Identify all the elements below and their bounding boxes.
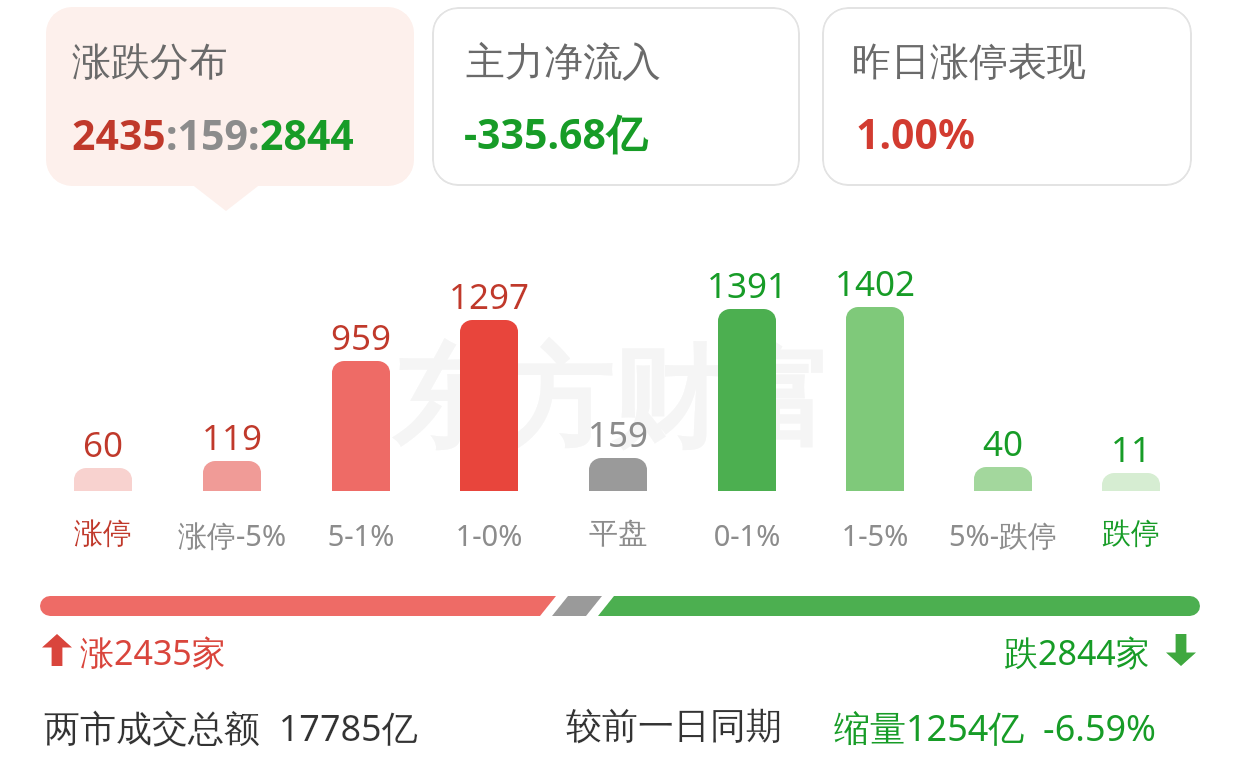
button[interactable]: [432, 7, 800, 186]
staticText: 涨停-5%: [142, 515, 322, 557]
staticText: 159: [548, 410, 688, 454]
staticText: 1402: [805, 259, 945, 303]
staticText: 较前一日同期: [566, 703, 782, 748]
button[interactable]: 0-1%: [657, 515, 837, 557]
button[interactable]: 5%-跌停: [913, 515, 1093, 557]
staticText: 两市成交总额 17785亿: [44, 703, 418, 752]
staticText: :159:: [166, 106, 260, 162]
button[interactable]: 涨停-5%: [142, 515, 322, 557]
button[interactable]: 跌停: [1041, 515, 1221, 557]
button[interactable]: [822, 7, 1192, 186]
other: Falling: [1166, 634, 1196, 666]
staticText: 119: [162, 413, 302, 457]
button[interactable]: 1-0%: [399, 515, 579, 557]
staticText: 平盘: [528, 515, 708, 557]
button[interactable]: 1-5%: [785, 515, 965, 557]
staticText: 1391: [677, 261, 817, 305]
staticText: 东方财富: [392, 330, 832, 469]
staticText: 2844: [260, 106, 354, 162]
staticText: 1-0%: [399, 515, 579, 557]
staticText: 0-1%: [657, 515, 837, 557]
button[interactable]: 涨停: [13, 515, 193, 557]
staticText: 跌2844家: [1004, 629, 1150, 675]
staticText: 跌停: [1041, 515, 1221, 557]
staticText: 昨日涨停表现: [852, 37, 1086, 86]
staticText: 涨2435家: [80, 629, 226, 675]
staticText: -335.68亿: [464, 105, 647, 161]
staticText: 1297: [419, 272, 559, 316]
staticText: 1.00%: [856, 105, 975, 161]
staticText: 涨停: [13, 515, 193, 557]
staticText: 涨跌分布: [72, 37, 228, 86]
button[interactable]: 平盘: [528, 515, 708, 557]
staticText: 缩量1254亿 -6.59%: [834, 703, 1157, 752]
staticText: 5-1%: [271, 515, 451, 557]
other: Rising: [42, 634, 72, 666]
staticText: 11: [1061, 425, 1201, 469]
staticText: 60: [33, 420, 173, 464]
staticText: 2435: [72, 106, 166, 162]
staticText: 40: [933, 419, 1073, 463]
button[interactable]: 5-1%: [271, 515, 451, 557]
staticText: 1-5%: [785, 515, 965, 557]
staticText: 5%-跌停: [913, 515, 1093, 557]
staticText: 主力净流入: [466, 37, 661, 86]
staticText: 959: [291, 313, 431, 357]
button[interactable]: [46, 7, 414, 186]
